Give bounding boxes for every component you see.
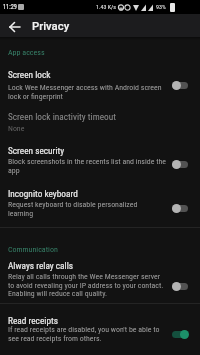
staticText: Enabling will reduce call quality. [8, 289, 108, 298]
button[interactable]: Incognito keyboard [0, 183, 200, 227]
staticText: see read receipts from others. [8, 334, 102, 343]
button[interactable] [8, 21, 22, 33]
staticText: Always relay calls [8, 260, 74, 271]
staticText: App access [8, 48, 45, 57]
button[interactable]: Always relay calls [0, 254, 200, 303]
button[interactable] [172, 161, 188, 168]
staticText: Screen lock [8, 69, 51, 80]
staticText: Read receipts [8, 315, 58, 326]
staticText: 1.43 K/s [96, 3, 117, 10]
staticText: Incognito keyboard [8, 188, 78, 199]
button[interactable]: Read receipts [0, 304, 200, 355]
staticText: None [8, 124, 25, 133]
staticText: app [8, 166, 20, 175]
button[interactable] [172, 82, 188, 89]
button[interactable] [172, 205, 188, 212]
staticText: 93% [156, 3, 166, 10]
staticText: lock or fingerprint [8, 92, 63, 101]
staticText: If read receipts are disabled, you won't… [8, 325, 160, 334]
button[interactable]: Screen lock inactivity timeout [0, 107, 200, 141]
staticText: Relay all calls through the Wee Messenge… [8, 272, 161, 281]
staticText: to avoid revealing your IP address to yo… [8, 281, 164, 290]
staticText: Block screenshots in the recents list an… [8, 157, 167, 166]
staticText: Privacy [32, 20, 70, 33]
button[interactable]: Screen security [0, 141, 200, 183]
button[interactable] [172, 331, 188, 338]
staticText: Lock Wee Messenger access with Android s… [8, 83, 162, 92]
staticText: Communication [8, 245, 58, 254]
button[interactable] [172, 283, 188, 290]
staticText: 11:29 [3, 3, 17, 10]
staticText: learning [8, 209, 34, 218]
staticText: Screen security [8, 145, 65, 156]
button[interactable]: Screen lock [0, 65, 200, 107]
staticText: Screen lock inactivity timeout [8, 111, 116, 122]
staticText: Request keyboard to disable personalized [8, 200, 138, 209]
